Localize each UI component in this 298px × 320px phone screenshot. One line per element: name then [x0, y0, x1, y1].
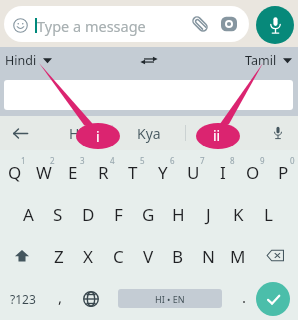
- button[interactable]: F: [103, 192, 133, 234]
- button[interactable]: L: [253, 192, 283, 234]
- staticText: 3: [80, 155, 85, 166]
- staticText: 0: [290, 155, 295, 166]
- button[interactable]: Voice input: [258, 116, 298, 150]
- staticText: Tamil: [245, 52, 277, 69]
- button[interactable]: Kya: [113, 116, 185, 150]
- staticText: 8: [230, 155, 235, 166]
- button[interactable]: Q: [0, 150, 29, 192]
- staticText: N: [202, 245, 215, 268]
- button[interactable]: R: [88, 150, 118, 192]
- staticText: E: [68, 161, 78, 184]
- button[interactable]: Backspace: [253, 234, 298, 277]
- staticText: J: [206, 203, 211, 226]
- button[interactable]: V: [133, 234, 163, 277]
- button[interactable]: G: [133, 192, 163, 234]
- button[interactable]: U: [178, 150, 208, 192]
- staticText: R: [98, 161, 109, 184]
- button[interactable]: ii: [186, 116, 258, 150]
- button[interactable]: J: [193, 192, 223, 234]
- staticText: ii: [213, 126, 221, 145]
- other: Attach: [191, 15, 209, 33]
- staticText: Y: [158, 161, 168, 184]
- button[interactable]: P: [268, 150, 298, 192]
- staticText: Kya: [137, 124, 161, 143]
- button[interactable]: B: [163, 234, 193, 277]
- staticText: F: [114, 203, 123, 226]
- button[interactable]: X: [73, 234, 103, 277]
- staticText: D: [82, 203, 95, 226]
- button[interactable]: E: [58, 150, 88, 192]
- button[interactable]: Enter: [256, 277, 298, 320]
- staticText: Hindi: [5, 52, 37, 69]
- staticText: X: [83, 245, 93, 268]
- button[interactable]: A: [14, 192, 43, 234]
- button[interactable]: Hindi: [5, 52, 52, 69]
- staticText: S: [53, 203, 63, 226]
- button[interactable]: D: [73, 192, 103, 234]
- staticText: B: [172, 245, 184, 268]
- button[interactable]: Swap languages: [140, 55, 158, 66]
- staticText: T: [128, 161, 138, 184]
- button[interactable]: M: [223, 234, 253, 277]
- button[interactable]: Tamil: [245, 52, 292, 69]
- button[interactable]: Shift: [0, 234, 44, 277]
- staticText: G: [142, 203, 155, 226]
- button[interactable]: [4, 80, 293, 110]
- button[interactable]: Back: [0, 116, 40, 150]
- staticText: i: [96, 127, 100, 146]
- staticText: 7: [200, 155, 205, 166]
- staticText: M: [230, 245, 246, 268]
- staticText: A: [23, 203, 34, 226]
- button[interactable]: W: [29, 150, 58, 192]
- staticText: 1: [21, 155, 26, 166]
- staticText: ii: [218, 124, 226, 143]
- staticText: I: [220, 161, 226, 184]
- button[interactable]: K: [223, 192, 253, 234]
- other: Emoji: [13, 18, 28, 33]
- staticText: HI • EN: [155, 293, 185, 305]
- button[interactable]: O: [238, 150, 268, 192]
- button[interactable]: .: [232, 277, 256, 320]
- staticText: P: [278, 161, 289, 184]
- staticText: L: [264, 203, 273, 226]
- staticText: C: [113, 245, 124, 268]
- button[interactable]: H: [163, 192, 193, 234]
- staticText: 6: [170, 155, 175, 166]
- button[interactable]: Y: [148, 150, 178, 192]
- button[interactable]: S: [43, 192, 73, 234]
- button[interactable]: HI • EN: [108, 277, 232, 320]
- staticText: H: [172, 203, 185, 226]
- staticText: Q: [8, 161, 22, 184]
- other: Camera: [219, 14, 239, 34]
- button[interactable]: Voice message: [256, 6, 294, 44]
- button[interactable]: Z: [44, 234, 73, 277]
- staticText: 2: [50, 155, 55, 166]
- button[interactable]: ,: [46, 277, 74, 320]
- staticText: U: [187, 161, 200, 184]
- staticText: W: [36, 161, 52, 184]
- button[interactable]: N: [193, 234, 223, 277]
- button[interactable]: C: [103, 234, 133, 277]
- staticText: V: [143, 245, 154, 268]
- button[interactable]: Change language: [74, 277, 108, 320]
- staticText: Z: [54, 245, 64, 268]
- staticText: 9: [260, 155, 265, 166]
- staticText: Type a message: [37, 16, 146, 36]
- staticText: O: [246, 161, 260, 184]
- button[interactable]: ?123: [0, 277, 46, 320]
- button[interactable]: Hi: [40, 116, 112, 150]
- button[interactable]: I: [208, 150, 238, 192]
- staticText: Hi: [69, 124, 83, 143]
- staticText: ,: [58, 287, 63, 307]
- staticText: 5: [140, 155, 145, 166]
- button[interactable]: T: [118, 150, 148, 192]
- staticText: 4: [110, 155, 115, 166]
- button[interactable]: Emoji: [4, 6, 249, 42]
- staticText: .: [242, 287, 247, 307]
- staticText: ?123: [10, 291, 36, 307]
- staticText: K: [233, 203, 244, 226]
